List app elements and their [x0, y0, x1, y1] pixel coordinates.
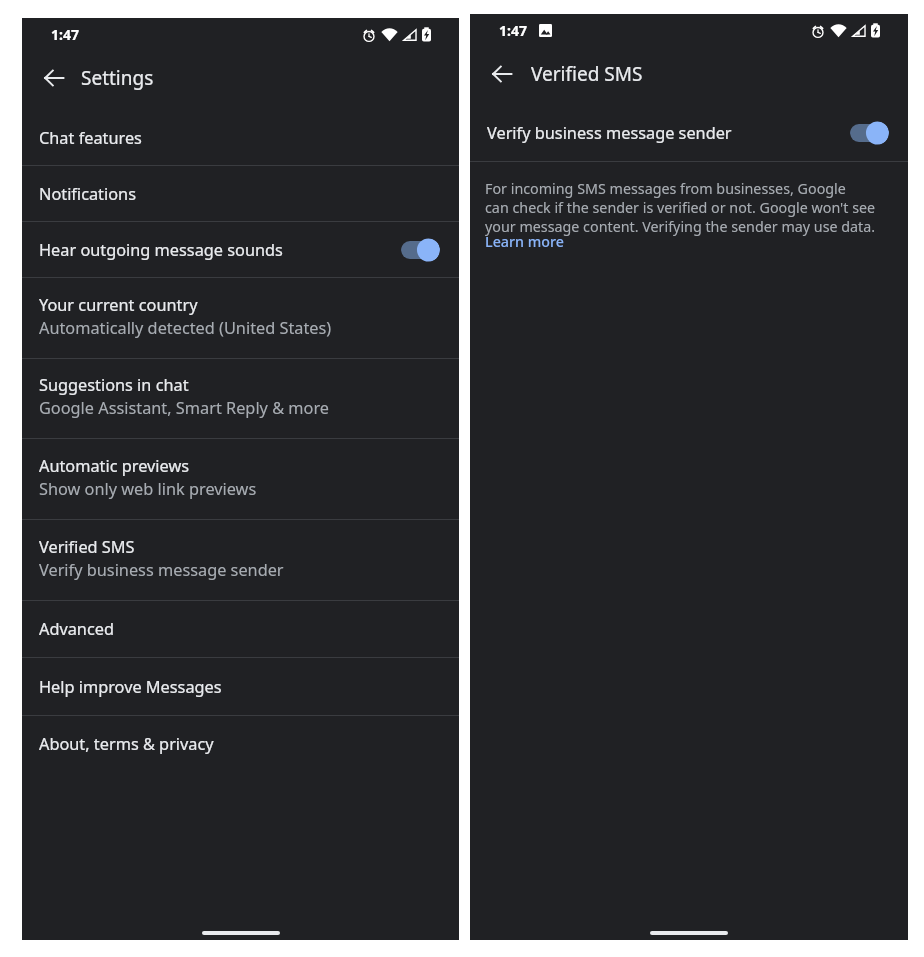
staticText: Notifications [39, 183, 440, 205]
button[interactable]: Notifications [22, 166, 459, 222]
staticText: Show only web link previews [39, 478, 257, 500]
staticText: 1:47 [51, 25, 79, 44]
staticText: Learn more [485, 232, 564, 251]
staticText: Hear outgoing message sounds [39, 239, 401, 261]
button[interactable]: Verified SMS [22, 520, 459, 601]
staticText: Automatically detected (United States) [39, 317, 332, 339]
button[interactable]: About, terms & privacy [22, 716, 459, 772]
staticText: Automatic previews [39, 455, 190, 477]
staticText: 1:47 [499, 21, 527, 40]
button[interactable]: Your current country [22, 278, 459, 359]
button[interactable]: Help improve Messages [22, 658, 459, 716]
button[interactable]: Chat features [22, 110, 459, 166]
button[interactable]: Toggle [850, 121, 889, 145]
button[interactable]: Hear outgoing message sounds [22, 222, 459, 278]
button[interactable]: Suggestions in chat [22, 359, 459, 439]
staticText: Google Assistant, Smart Reply & more [39, 397, 330, 419]
staticText: Your current country [39, 294, 198, 316]
staticText: Advanced [39, 618, 440, 640]
staticText: Help improve Messages [39, 676, 440, 698]
button[interactable]: Learn more [485, 232, 564, 251]
button[interactable]: Back [35, 62, 71, 98]
button[interactable]: Advanced [22, 601, 459, 658]
staticText: Verified SMS [531, 61, 643, 87]
staticText: Verified SMS [39, 536, 135, 558]
staticText: Verify business message sender [39, 559, 284, 581]
staticText: Verify business message sender [487, 122, 850, 144]
button[interactable]: Toggle [401, 238, 440, 262]
staticText: For incoming SMS messages from businesse… [485, 179, 876, 236]
staticText: Settings [81, 65, 154, 91]
button[interactable]: Automatic previews [22, 439, 459, 520]
staticText: About, terms & privacy [39, 733, 440, 755]
staticText: Chat features [39, 127, 440, 149]
button[interactable]: Back [483, 58, 519, 94]
button[interactable]: Verify business message sender [470, 106, 908, 161]
staticText: Suggestions in chat [39, 374, 189, 396]
